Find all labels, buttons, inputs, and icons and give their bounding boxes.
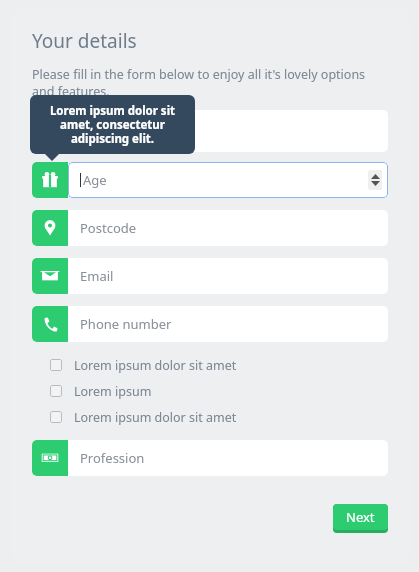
staticText: Lorem ipsum [74,383,152,400]
button[interactable]: Lorem ipsum dolor sit amet [32,408,388,426]
button[interactable]: Location [32,210,388,246]
button[interactable]: Next [333,504,388,533]
button[interactable]: Increment or decrement [368,170,382,190]
staticText: Age [83,171,107,189]
staticText: Please fill in the form below to enjoy a… [32,66,388,100]
staticText: Phone number [80,315,172,333]
staticText: Email [80,267,114,285]
other: Location [32,210,68,246]
staticText: Lorem ipsum dolor sit amet [74,357,237,374]
other: Money [32,440,68,476]
button[interactable]: Phone [32,306,388,342]
button[interactable]: Birthday [32,162,388,198]
button[interactable]: Lorem ipsum [32,382,388,400]
other: Birthday [32,162,68,198]
button[interactable]: Money [32,440,388,476]
staticText: Your details [32,28,137,54]
staticText: Lorem ipsum dolor sit amet, consectetur … [40,103,185,146]
staticText: Next [346,508,375,526]
button[interactable] [32,110,388,152]
staticText: Profession [80,449,145,467]
button[interactable]: Lorem ipsum dolor sit amet [32,356,388,374]
staticText: Postcode [80,219,137,237]
staticText: Lorem ipsum dolor sit amet [74,409,237,426]
button[interactable]: Email [32,258,388,294]
other: Phone [32,306,68,342]
other: Email [32,258,68,294]
